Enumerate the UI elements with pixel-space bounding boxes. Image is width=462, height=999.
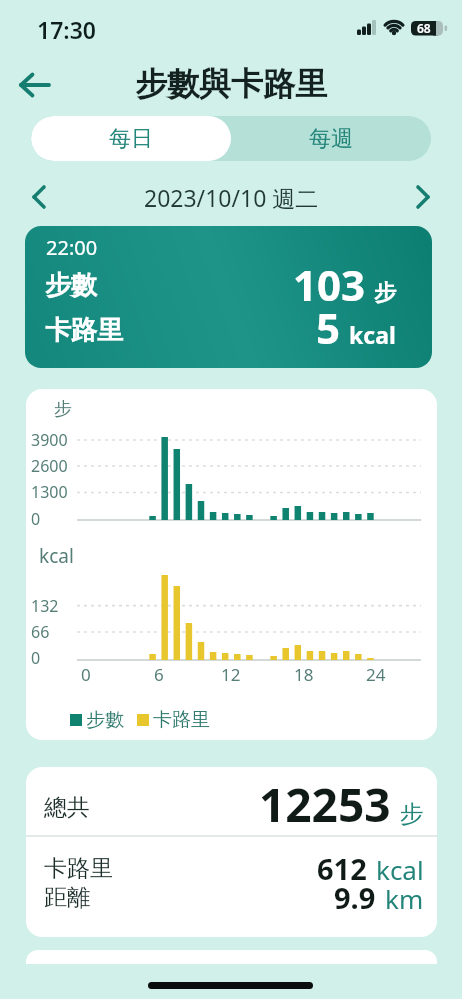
staticText: 9.9	[334, 878, 376, 917]
staticText: 卡路里	[44, 854, 113, 883]
staticText: 總共	[44, 793, 90, 822]
staticText: 步數與卡路里	[135, 64, 327, 104]
staticText: 0	[31, 647, 41, 669]
staticText: 2023/10/10 週二	[144, 182, 319, 213]
staticText: 0	[31, 508, 41, 530]
button[interactable]: 每日	[31, 116, 231, 161]
staticText: 132	[31, 595, 59, 617]
staticText: 5	[316, 299, 341, 356]
button[interactable]	[406, 180, 440, 214]
staticText: 103	[293, 256, 366, 313]
staticText: kcal	[39, 543, 74, 569]
staticText: 17:30	[37, 14, 96, 45]
button[interactable]	[22, 180, 56, 214]
button[interactable]: 總共	[26, 767, 437, 937]
button[interactable]	[10, 64, 60, 106]
staticText: 22:00	[46, 234, 98, 261]
staticText: 0	[81, 663, 91, 686]
staticText: 每日	[109, 125, 153, 153]
staticText: 18	[294, 663, 314, 686]
staticText: km	[385, 881, 424, 916]
button[interactable]: 每週	[231, 116, 431, 161]
staticText: 6	[154, 663, 164, 686]
staticText: 612	[317, 849, 367, 888]
staticText: 步	[54, 398, 72, 421]
staticText: 步數	[45, 269, 97, 302]
staticText: 12253	[259, 773, 391, 836]
staticText: 24	[366, 663, 386, 686]
staticText: 3900	[31, 429, 68, 451]
staticText: 步	[374, 279, 396, 307]
staticText: 12	[221, 663, 241, 686]
staticText: 卡路里	[153, 708, 210, 732]
staticText: 68	[417, 20, 431, 36]
button[interactable]: 22:00	[25, 226, 432, 368]
staticText: 2600	[31, 455, 68, 477]
staticText: 每週	[309, 125, 353, 153]
staticText: 1300	[31, 481, 68, 503]
staticText: kcal	[376, 852, 424, 887]
staticText: 卡路里	[45, 314, 123, 347]
staticText: 66	[31, 621, 50, 643]
staticText: 步數	[86, 708, 124, 732]
staticText: 距離	[44, 883, 90, 912]
staticText: kcal	[349, 319, 396, 350]
staticText: 步	[400, 799, 424, 829]
